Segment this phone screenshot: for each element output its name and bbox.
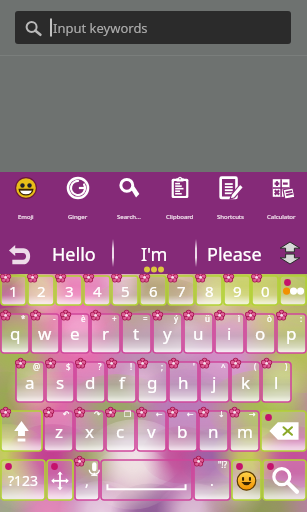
staticText: ? xyxy=(98,361,102,372)
button[interactable]: i xyxy=(214,313,245,354)
button[interactable]: 2 xyxy=(27,275,55,306)
staticText: l xyxy=(274,371,279,394)
staticText: Calculator xyxy=(267,213,296,221)
staticText: ì xyxy=(238,313,241,324)
button[interactable]: Arrows xyxy=(46,459,74,501)
staticText: ò xyxy=(267,313,272,324)
button[interactable]: 0 xyxy=(251,275,279,306)
button[interactable]: f xyxy=(106,361,137,403)
button[interactable]: Calculator xyxy=(256,172,307,232)
staticText: j xyxy=(212,371,217,394)
staticText: Hello xyxy=(52,242,96,267)
button[interactable]: Shortcuts xyxy=(205,172,256,232)
button[interactable]: z xyxy=(43,410,74,452)
button[interactable]: o xyxy=(245,313,276,354)
button[interactable]: h xyxy=(168,361,199,403)
staticText: ?123 xyxy=(8,471,39,490)
staticText: ↶ xyxy=(63,410,70,419)
button[interactable]: k xyxy=(230,361,261,403)
staticText: ü xyxy=(205,313,210,324)
button[interactable]: r xyxy=(90,313,121,354)
button[interactable]: x xyxy=(74,410,105,452)
button[interactable]: Comma xyxy=(74,459,100,501)
button[interactable]: v xyxy=(136,410,167,452)
staticText: * xyxy=(21,313,26,324)
staticText: ) xyxy=(285,361,288,372)
button[interactable]: p xyxy=(276,313,307,354)
button[interactable]: a xyxy=(15,361,45,403)
button[interactable]: . xyxy=(193,459,231,501)
button[interactable]: j xyxy=(199,361,230,403)
staticText: ^ xyxy=(221,361,226,372)
staticText: . xyxy=(210,471,214,490)
button[interactable]: 1 xyxy=(0,275,27,306)
button[interactable]: q xyxy=(0,313,30,354)
button[interactable]: 8 xyxy=(195,275,223,306)
staticText: Shortcuts xyxy=(217,213,244,221)
button[interactable]: Input keywords xyxy=(15,11,291,44)
button[interactable]: 5 xyxy=(111,275,139,306)
staticText: è xyxy=(81,313,86,324)
button[interactable]: 3 xyxy=(55,275,83,306)
button[interactable]: Search xyxy=(262,459,307,501)
button[interactable]: b xyxy=(167,410,198,452)
button[interactable]: d xyxy=(75,361,106,403)
staticText: ! xyxy=(130,361,133,372)
button[interactable]: 7 xyxy=(167,275,195,306)
button[interactable]: t xyxy=(121,313,152,354)
staticText: ( xyxy=(254,361,257,372)
staticText: Search... xyxy=(117,213,141,221)
button[interactable]: m xyxy=(229,410,260,452)
button[interactable]: n xyxy=(198,410,229,452)
button[interactable]: g xyxy=(137,361,168,403)
button[interactable]: c xyxy=(105,410,136,452)
staticText: 6 xyxy=(149,281,158,301)
button[interactable]: w xyxy=(30,313,60,354)
staticText: q xyxy=(10,322,21,345)
staticText: a xyxy=(25,371,35,394)
staticText: n xyxy=(208,420,219,443)
staticText: f xyxy=(119,371,125,394)
button[interactable]: Clipboard xyxy=(154,172,205,232)
staticText: e xyxy=(70,322,80,345)
button[interactable]: I'm xyxy=(114,232,194,274)
staticText: ' xyxy=(193,361,195,372)
button[interactable]: y xyxy=(152,313,183,354)
button[interactable]: Emoji xyxy=(231,459,262,501)
button[interactable]: Page xyxy=(279,275,307,306)
button[interactable]: Shift xyxy=(0,410,43,452)
staticText: m xyxy=(237,420,253,443)
button[interactable]: Space xyxy=(100,459,193,501)
button[interactable]: s xyxy=(45,361,75,403)
button[interactable]: l xyxy=(261,361,292,403)
button[interactable]: Please xyxy=(194,232,274,274)
button[interactable]: Emoji xyxy=(0,172,52,232)
button[interactable]: Backspace xyxy=(260,410,307,452)
button[interactable]: ?123 xyxy=(0,459,46,501)
staticText: ; xyxy=(161,361,164,372)
button[interactable]: 4 xyxy=(83,275,111,306)
button[interactable]: Hello xyxy=(34,232,114,274)
staticText: y xyxy=(163,322,172,345)
button[interactable]: Undo xyxy=(0,232,40,274)
staticText: 7 xyxy=(177,281,186,301)
staticText: ← xyxy=(156,410,163,419)
staticText: d xyxy=(85,371,96,394)
button[interactable]: e xyxy=(60,313,90,354)
staticText: $ xyxy=(66,361,71,372)
staticText: k xyxy=(241,371,251,394)
staticText: I'm xyxy=(141,242,168,267)
button[interactable]: 6 xyxy=(139,275,167,306)
staticText: g xyxy=(147,371,158,394)
staticText: 4 xyxy=(93,281,102,301)
button[interactable]: 9 xyxy=(223,275,251,306)
staticText: ý xyxy=(174,313,179,324)
staticText: 2 xyxy=(37,281,46,301)
button[interactable]: Search... xyxy=(103,172,154,232)
button[interactable]: More suggestions xyxy=(273,232,307,274)
staticText: - xyxy=(53,313,56,324)
staticText: @ xyxy=(33,361,41,372)
button[interactable]: u xyxy=(183,313,214,354)
staticText: 0 xyxy=(261,281,270,301)
button[interactable]: Ginger xyxy=(52,172,103,232)
